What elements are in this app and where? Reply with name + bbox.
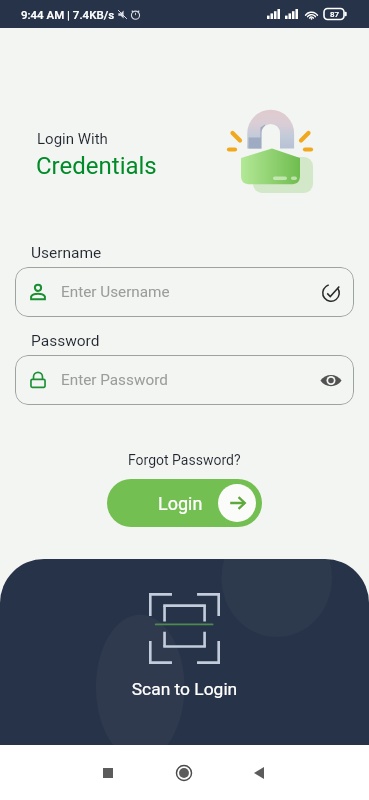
staticText: Username — [31, 244, 102, 262]
button[interactable]: Back — [229, 745, 289, 800]
button[interactable]: Enter Username — [15, 267, 354, 317]
button[interactable]: Enter Password — [15, 355, 354, 405]
staticText: 87 — [330, 10, 340, 19]
staticText: Enter Password — [61, 371, 315, 389]
staticText: Forgot Password? — [128, 452, 241, 468]
button[interactable]: Login — [107, 479, 262, 527]
button[interactable]: Recents — [78, 745, 138, 800]
button[interactable]: Forgot Password? — [122, 448, 247, 472]
staticText: Login With — [37, 130, 108, 148]
staticText: Enter Username — [61, 283, 317, 301]
button[interactable]: Show password — [319, 369, 342, 392]
staticText: Password — [31, 332, 100, 350]
button[interactable]: Scan to Login — [0, 559, 369, 745]
staticText: Scan to Login — [0, 679, 369, 699]
staticText: Credentials — [36, 152, 157, 180]
button[interactable]: Verified — [320, 282, 341, 303]
staticText: Login — [158, 493, 203, 514]
staticText: 9:44 AM | 7.4KB/s — [21, 8, 115, 21]
button[interactable]: Home — [154, 745, 214, 800]
